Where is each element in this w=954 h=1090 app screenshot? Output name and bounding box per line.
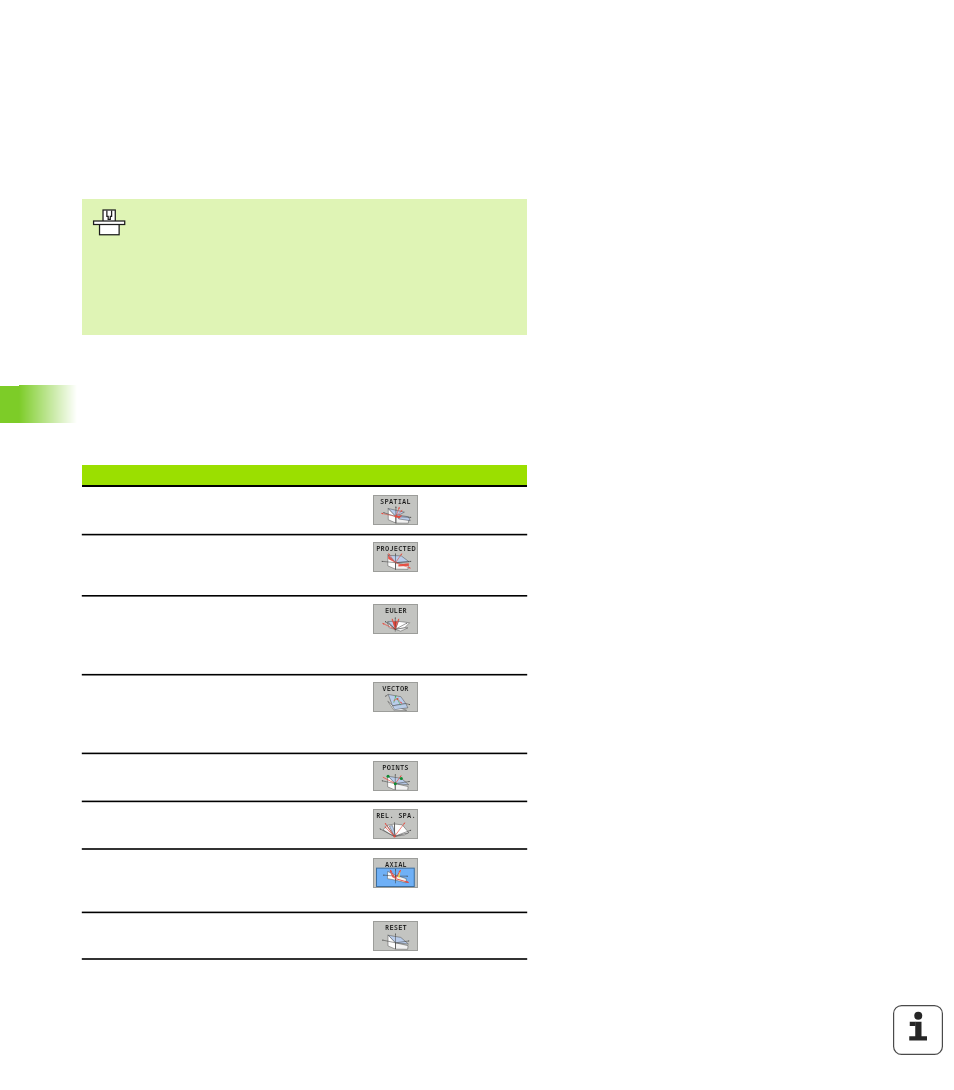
staticText: REL. SPA. — [376, 811, 416, 821]
button[interactable]: SPATIAL — [373, 495, 418, 525]
staticText: POINTS — [382, 763, 409, 773]
button[interactable]: Information — [893, 1005, 943, 1055]
button[interactable]: PROJECTED — [373, 542, 418, 572]
button[interactable]: POINTS — [373, 761, 418, 791]
staticText: AXIAL — [385, 860, 407, 870]
button[interactable]: EULER — [373, 604, 418, 634]
button[interactable]: REL. SPA. — [373, 809, 418, 839]
button[interactable]: VECTOR — [373, 682, 418, 712]
staticText: SPATIAL — [380, 497, 411, 507]
staticText: RESET — [385, 923, 407, 933]
staticText: EULER — [385, 606, 407, 616]
button[interactable]: AXIAL — [373, 858, 418, 888]
staticText: PROJECTED — [376, 544, 416, 554]
button[interactable]: RESET — [373, 921, 418, 951]
staticText: VECTOR — [382, 684, 409, 694]
